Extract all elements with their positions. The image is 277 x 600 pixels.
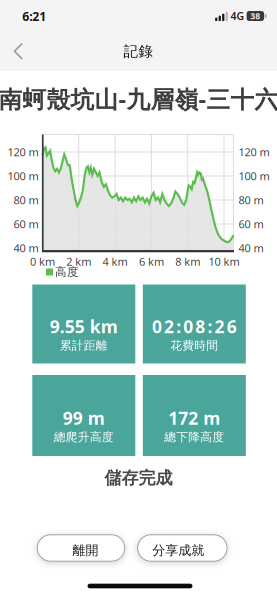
staticText: 60 m xyxy=(238,216,263,231)
staticText: 8 km xyxy=(175,254,200,269)
staticText: 4G xyxy=(230,9,244,23)
staticText: 80 m xyxy=(13,192,38,207)
staticText: 99 m xyxy=(63,406,105,430)
staticText: 南蚵殼坑山-九層嶺-三十六 xyxy=(0,83,277,115)
button[interactable]: 分享成就 xyxy=(137,534,228,562)
button[interactable]: 離開 xyxy=(37,534,125,562)
staticText: 高度 xyxy=(55,265,79,279)
staticText: 離開 xyxy=(72,542,98,559)
staticText: 分享成就 xyxy=(152,542,204,559)
staticText: 6:21 xyxy=(22,8,46,25)
staticText: 120 m xyxy=(7,144,38,159)
staticText: 花費時間 xyxy=(170,338,218,353)
staticText: 6 km xyxy=(139,254,164,269)
staticText: 172 m xyxy=(168,406,220,430)
staticText: 100 m xyxy=(238,168,269,183)
staticText: 9.55 km xyxy=(50,315,118,338)
staticText: 總下降高度 xyxy=(164,430,224,445)
staticText: 累計距離 xyxy=(60,338,108,353)
staticText: 0 km xyxy=(30,254,55,269)
staticText: 10 km xyxy=(208,254,239,269)
staticText: 80 m xyxy=(238,192,263,207)
staticText: 120 m xyxy=(238,144,269,159)
staticText: 60 m xyxy=(13,216,38,231)
button[interactable]: Back xyxy=(6,35,30,67)
staticText: 40 m xyxy=(13,240,38,255)
staticText: 儲存完成 xyxy=(104,467,172,489)
staticText: 記錄 xyxy=(123,42,153,61)
staticText: 總爬升高度 xyxy=(54,430,114,445)
staticText: 02:08:26 xyxy=(152,315,237,338)
staticText: 4 km xyxy=(103,254,128,269)
staticText: 100 m xyxy=(7,168,38,183)
staticText: 2 km xyxy=(66,254,91,269)
staticText: 40 m xyxy=(238,240,263,255)
staticText: 38 xyxy=(250,10,260,22)
